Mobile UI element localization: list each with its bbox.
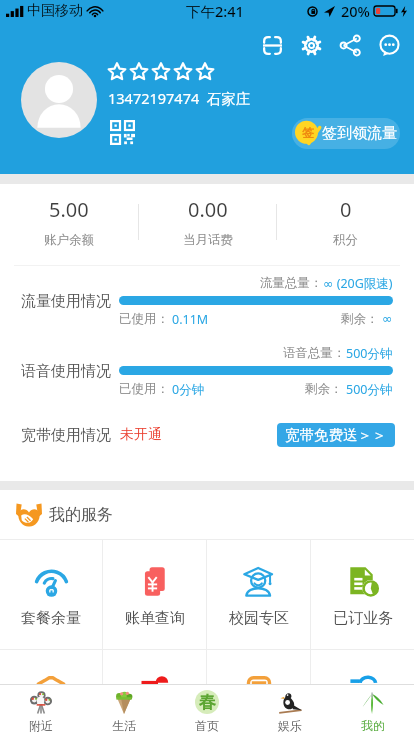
button[interactable]: Service: [207, 650, 310, 684]
button[interactable]: 已订业务: [311, 540, 414, 649]
button[interactable]: QR code: [110, 120, 135, 145]
staticText: 0: [340, 196, 352, 223]
button[interactable]: 校园专区: [207, 540, 310, 649]
button[interactable]: 语音使用情况: [0, 336, 414, 406]
staticText: 春: [199, 692, 216, 713]
staticText: 首页: [195, 718, 219, 733]
button[interactable]: Service: [311, 650, 414, 684]
staticText: 语音使用情况: [21, 362, 111, 381]
staticText: 校园专区: [229, 609, 289, 628]
staticText: 娱乐: [278, 718, 302, 733]
button[interactable]: 账单查询: [103, 540, 206, 649]
staticText: 签到领流量: [322, 124, 397, 143]
button[interactable]: 5.00: [0, 184, 138, 260]
staticText: 流量使用情况: [21, 292, 111, 311]
button[interactable]: Messages: [370, 26, 409, 65]
staticText: 未开通: [120, 426, 162, 444]
button[interactable]: 春: [165, 685, 248, 736]
staticText: 宽带使用情况: [21, 426, 111, 445]
staticText: 流量总量：: [260, 275, 323, 291]
staticText: 中国移动: [27, 2, 83, 20]
staticText: 500分钟: [346, 381, 393, 398]
staticText: 20%: [341, 1, 370, 21]
staticText: 已使用：: [119, 311, 169, 327]
staticText: 附近: [29, 718, 53, 733]
staticText: 签: [302, 125, 314, 140]
staticText: ∞ (20G限速): [323, 275, 393, 292]
staticText: 积分: [333, 232, 358, 248]
button[interactable]: 0.00: [139, 184, 276, 260]
button[interactable]: 附近: [0, 685, 82, 736]
button[interactable]: Settings: [292, 26, 331, 65]
staticText: 0分钟: [172, 381, 205, 398]
staticText: ∞: [382, 311, 393, 326]
button[interactable]: 签: [292, 118, 400, 149]
staticText: 生活: [112, 718, 136, 733]
button[interactable]: Service: [0, 650, 102, 684]
button[interactable]: 0: [277, 184, 414, 260]
button[interactable]: 我的: [331, 685, 414, 736]
staticText: 我的服务: [49, 505, 113, 525]
staticText: 账户余额: [44, 232, 94, 248]
staticText: 账单查询: [125, 609, 185, 628]
staticText: 0.00: [188, 196, 228, 223]
staticText: 宽带免费送＞＞: [285, 426, 387, 444]
button[interactable]: 娱乐: [248, 685, 331, 736]
button[interactable]: 套餐余量: [0, 540, 102, 649]
staticText: 下午2:41: [186, 1, 244, 21]
staticText: 我的: [361, 718, 385, 733]
button[interactable]: 宽带免费送＞＞: [277, 423, 395, 447]
staticText: 0.11M: [172, 311, 209, 328]
button[interactable]: 生活: [82, 685, 165, 736]
staticText: 500分钟: [346, 345, 393, 362]
staticText: 已订业务: [333, 609, 393, 628]
button[interactable]: Share: [331, 26, 370, 65]
staticText: 13472197474 石家庄: [108, 88, 251, 108]
staticText: 剩余：: [305, 381, 343, 397]
staticText: 剩余：: [341, 311, 379, 327]
staticText: 当月话费: [183, 232, 233, 248]
button[interactable]: Scan: [253, 26, 292, 65]
button[interactable]: 流量使用情况: [0, 266, 414, 336]
staticText: 5.00: [49, 196, 89, 223]
button[interactable]: Avatar: [21, 62, 97, 138]
button[interactable]: Service: [103, 650, 206, 684]
staticText: 套餐余量: [21, 609, 81, 628]
staticText: 语音总量：: [283, 345, 346, 361]
staticText: 已使用：: [119, 381, 169, 397]
